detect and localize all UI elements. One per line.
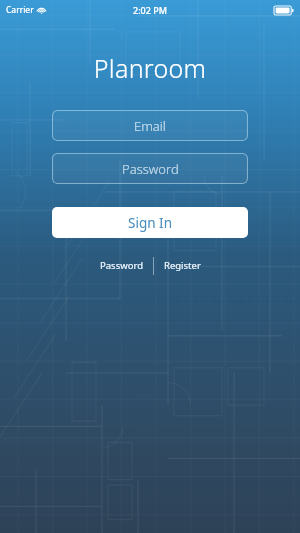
staticText: Planroom (0, 51, 300, 85)
staticText: 2:02 PM (133, 4, 167, 16)
button[interactable]: Password (90, 256, 153, 275)
staticText: Register (164, 259, 201, 272)
staticText: Sign In (128, 214, 172, 232)
button[interactable]: Email (52, 110, 248, 141)
button[interactable]: Password (52, 153, 248, 184)
staticText: Carrier (6, 4, 34, 16)
button[interactable]: Sign In (52, 207, 248, 238)
button[interactable]: Register (154, 256, 211, 275)
staticText: Email (134, 117, 166, 135)
staticText: Password (100, 259, 143, 272)
staticText: Password (122, 160, 179, 178)
